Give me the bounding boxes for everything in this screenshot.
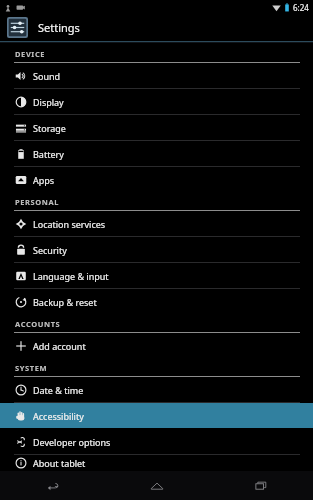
staticText: Security bbox=[33, 244, 67, 256]
staticText: ACCOUNTS bbox=[15, 319, 61, 329]
staticText: PERSONAL bbox=[15, 197, 60, 207]
other: Settings app icon bbox=[7, 17, 28, 38]
staticText: Date & time bbox=[33, 384, 84, 396]
button[interactable]: About tablet bbox=[0, 455, 313, 471]
button[interactable]: Security bbox=[0, 237, 313, 262]
staticText: Battery bbox=[33, 148, 64, 160]
button[interactable]: Language & input bbox=[0, 263, 313, 288]
button[interactable]: Display bbox=[0, 89, 313, 114]
staticText: About tablet bbox=[33, 457, 86, 469]
staticText: Apps bbox=[33, 174, 55, 186]
button[interactable]: Recent apps bbox=[209, 471, 313, 500]
staticText: Display bbox=[33, 96, 64, 108]
staticText: Add account bbox=[33, 340, 86, 352]
staticText: DEVICE bbox=[15, 49, 46, 59]
staticText: SYSTEM bbox=[15, 363, 48, 373]
staticText: Settings bbox=[38, 20, 80, 35]
button[interactable]: Developer options bbox=[0, 429, 313, 454]
staticText: Developer options bbox=[33, 436, 111, 448]
button[interactable]: Back bbox=[0, 471, 105, 500]
button[interactable]: Backup & reset bbox=[0, 289, 313, 314]
staticText: Storage bbox=[33, 122, 66, 134]
staticText: Accessibility bbox=[33, 410, 84, 422]
staticText: Location services bbox=[33, 218, 106, 230]
button[interactable]: Date & time bbox=[0, 377, 313, 402]
button[interactable]: Accessibility bbox=[0, 403, 313, 428]
staticText: 6:24 bbox=[293, 2, 309, 13]
button[interactable]: Battery bbox=[0, 141, 313, 166]
button[interactable]: Add account bbox=[0, 333, 313, 358]
staticText: Backup & reset bbox=[33, 296, 97, 308]
button[interactable]: Apps bbox=[0, 167, 313, 192]
staticText: Sound bbox=[33, 70, 61, 82]
button[interactable]: Location services bbox=[0, 211, 313, 236]
staticText: Language & input bbox=[33, 270, 109, 282]
button[interactable]: Sound bbox=[0, 63, 313, 88]
button[interactable]: Storage bbox=[0, 115, 313, 140]
button[interactable]: Home bbox=[105, 471, 209, 500]
